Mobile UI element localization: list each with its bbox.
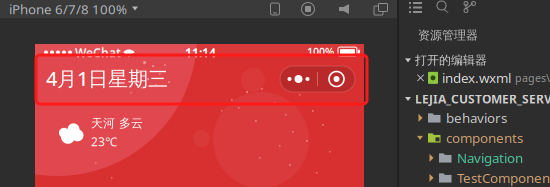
staticText: pages\or (515, 71, 550, 85)
staticText: WeChat (75, 44, 121, 60)
staticText: 打开的编辑器 (415, 53, 487, 68)
staticText: behaviors (446, 109, 507, 127)
staticText: 100% (307, 44, 334, 59)
button[interactable]: TestComponent (428, 166, 550, 187)
button[interactable]: Explorer (409, 2, 422, 13)
staticText: 11:14 (185, 44, 216, 60)
staticText: 天河 多云 (91, 116, 143, 131)
button[interactable]: Windows (371, 0, 391, 18)
button[interactable]: Navigation (428, 146, 523, 170)
staticText: 23℃ (91, 134, 117, 150)
button[interactable]: Source Control (463, 1, 476, 13)
button[interactable]: behaviors (417, 106, 507, 130)
staticText: components (446, 129, 523, 147)
button[interactable]: Search (437, 1, 449, 13)
button[interactable]: Mini program menu (280, 66, 355, 92)
button[interactable]: 打开的编辑器 (405, 50, 487, 71)
button[interactable]: components (417, 126, 523, 150)
staticText: 资源管理器 (418, 28, 478, 43)
button[interactable]: index.wxml (417, 66, 550, 90)
button[interactable]: Record (298, 0, 318, 18)
button[interactable]: LEJIA_CUSTOMER_SERVICE_SY (405, 88, 550, 110)
button[interactable]: iPhone 6/7/8 100% (9, 0, 139, 18)
staticText: Navigation (457, 149, 523, 167)
staticText: LEJIA_CUSTOMER_SERVICE_SY (415, 91, 550, 107)
button[interactable]: Sound (334, 0, 354, 18)
staticText: iPhone 6/7/8 100% (9, 0, 127, 18)
staticText: 4月1日星期三 (46, 65, 168, 92)
staticText: index.wxml (442, 69, 511, 87)
staticText: TestComponent (457, 169, 550, 187)
button[interactable]: Device (265, 0, 285, 18)
